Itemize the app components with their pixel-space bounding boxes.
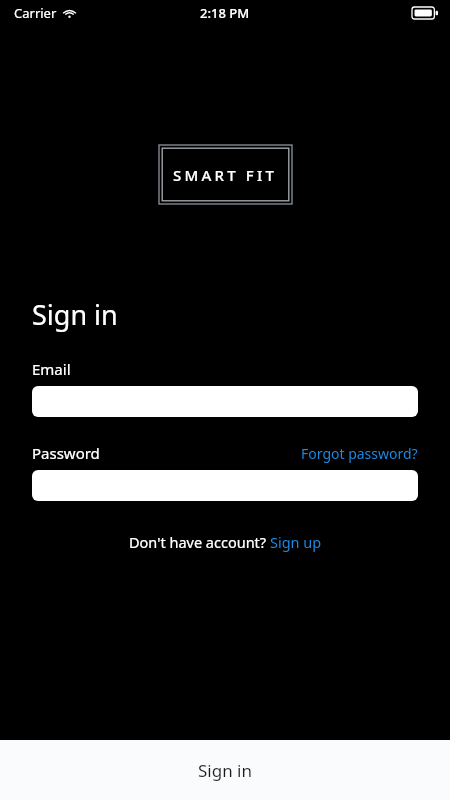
staticText: Don't have account? xyxy=(129,532,270,552)
staticText: SMART FIT xyxy=(173,165,278,185)
staticText: Carrier xyxy=(14,4,57,22)
staticText: Password xyxy=(32,443,100,463)
button[interactable]: Email xyxy=(32,386,418,417)
button[interactable]: Sign up xyxy=(270,532,322,552)
button[interactable]: SMART FIT xyxy=(159,145,292,204)
button[interactable]: Password xyxy=(32,470,418,501)
staticText: Sign in xyxy=(32,296,118,333)
staticText: Sign in xyxy=(198,759,252,782)
staticText: 2:18 PM xyxy=(200,4,250,22)
staticText: Forgot password? xyxy=(301,444,418,463)
button[interactable]: Sign in xyxy=(0,740,450,800)
staticText: Sign up xyxy=(270,532,322,552)
button[interactable]: Forgot password? xyxy=(301,444,418,463)
staticText: Email xyxy=(32,359,71,379)
